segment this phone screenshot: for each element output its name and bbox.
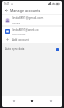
button[interactable]: Home bbox=[7, 96, 21, 105]
staticText: linda8891@work.co bbox=[12, 28, 39, 32]
button[interactable]: Accounts bbox=[25, 96, 39, 105]
staticText: Google bbox=[12, 21, 21, 24]
staticText: Auto sync data bbox=[5, 47, 25, 51]
staticText: Work profile bbox=[12, 33, 26, 36]
staticText: Add account bbox=[12, 38, 29, 42]
button[interactable]: linda8891@gmail.com bbox=[2, 15, 62, 25]
button[interactable]: Auto sync data bbox=[2, 45, 62, 53]
staticText: 9:41 bbox=[4, 2, 10, 6]
staticText: linda8891@gmail.com bbox=[12, 16, 44, 20]
button[interactable]: linda8891@work.co bbox=[2, 27, 62, 36]
button[interactable]: Settings bbox=[44, 96, 58, 105]
button[interactable]: Add account bbox=[2, 36, 62, 43]
button[interactable]: Back bbox=[2, 6, 10, 14]
staticText: Manage accounts bbox=[10, 8, 41, 13]
other: Auto sync toggle bbox=[56, 48, 59, 51]
